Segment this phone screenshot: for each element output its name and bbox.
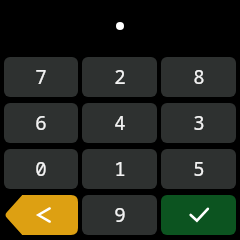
button[interactable]: 8 — [161, 57, 236, 97]
staticText: 1 — [114, 156, 126, 182]
button[interactable]: 2 — [82, 57, 157, 97]
button[interactable]: 9 — [82, 195, 157, 235]
button[interactable]: 1 — [82, 149, 157, 189]
staticText: 3 — [193, 110, 205, 136]
staticText: 7 — [35, 64, 47, 90]
button[interactable]: 3 — [161, 103, 236, 143]
staticText: 8 — [193, 64, 205, 90]
staticText: 6 — [35, 110, 47, 136]
button[interactable]: 4 — [82, 103, 157, 143]
button[interactable]: 5 — [161, 149, 236, 189]
staticText: 4 — [114, 110, 126, 136]
button[interactable]: 0 — [4, 149, 78, 189]
staticText: 2 — [114, 64, 126, 90]
staticText: 0 — [35, 156, 47, 182]
button[interactable]: Confirm — [161, 195, 236, 235]
button[interactable]: 7 — [4, 57, 78, 97]
button[interactable]: 6 — [4, 103, 78, 143]
button[interactable]: Backspace — [4, 195, 78, 235]
staticText: 5 — [193, 156, 205, 182]
staticText: 9 — [114, 202, 126, 228]
